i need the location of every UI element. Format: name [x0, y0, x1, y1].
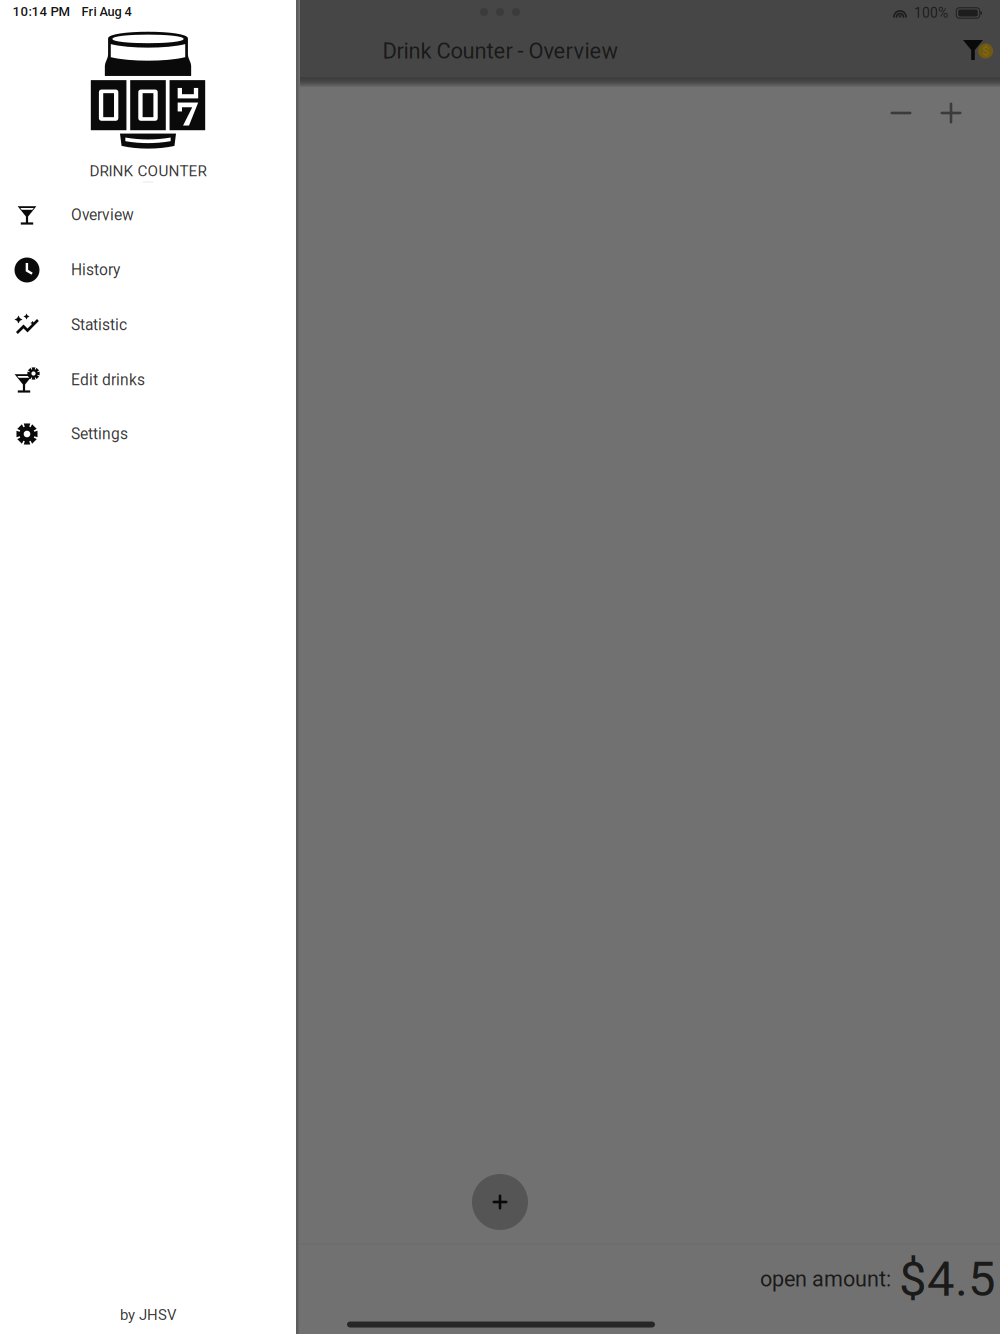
staticText: Drink Counter - Overview: [382, 38, 617, 64]
button[interactable]: Decrease: [878, 90, 924, 136]
staticText: Settings: [71, 425, 128, 443]
staticText: Fri Aug 4: [81, 4, 131, 19]
button[interactable]: History: [0, 242, 296, 297]
button[interactable]: Increase: [928, 90, 974, 136]
staticText: 100%: [914, 5, 948, 21]
staticText: Overview: [71, 206, 134, 224]
staticText: by JHSV: [120, 1306, 176, 1324]
button[interactable]: Statistic: [0, 297, 296, 352]
staticText: Edit drinks: [71, 371, 145, 389]
staticText: DRINK COUNTER: [89, 162, 206, 180]
staticText: $: [982, 43, 989, 59]
button[interactable]: Overview: [0, 187, 296, 242]
staticText: $4.5: [899, 1250, 996, 1308]
staticText: 10:14 PM: [12, 4, 70, 19]
button[interactable]: Add drink: [472, 1174, 528, 1230]
staticText: open amount:: [760, 1266, 891, 1292]
button[interactable]: Settings: [0, 406, 296, 461]
button[interactable]: Filter by amount: [963, 39, 993, 61]
button[interactable]: Edit drinks: [0, 352, 296, 407]
staticText: History: [71, 261, 120, 279]
staticText: Statistic: [71, 316, 127, 334]
